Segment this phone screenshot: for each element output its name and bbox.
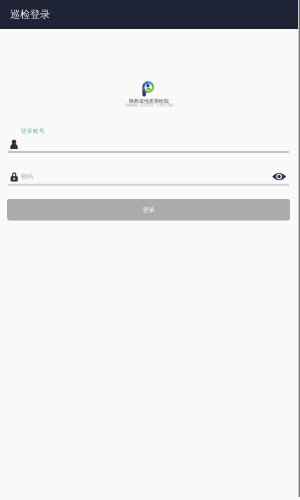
staticText: 陕西省地质测绘院 — [129, 98, 169, 104]
staticText: SHAANXI GEOLOGY SURVEYING — [125, 103, 173, 107]
staticText: 登录账号 — [21, 127, 45, 135]
button[interactable]: 登录 — [7, 199, 290, 220]
staticText: 登录 — [142, 206, 154, 214]
staticText: 密码 — [21, 173, 33, 180]
staticText: 巡检登录 — [10, 8, 50, 21]
